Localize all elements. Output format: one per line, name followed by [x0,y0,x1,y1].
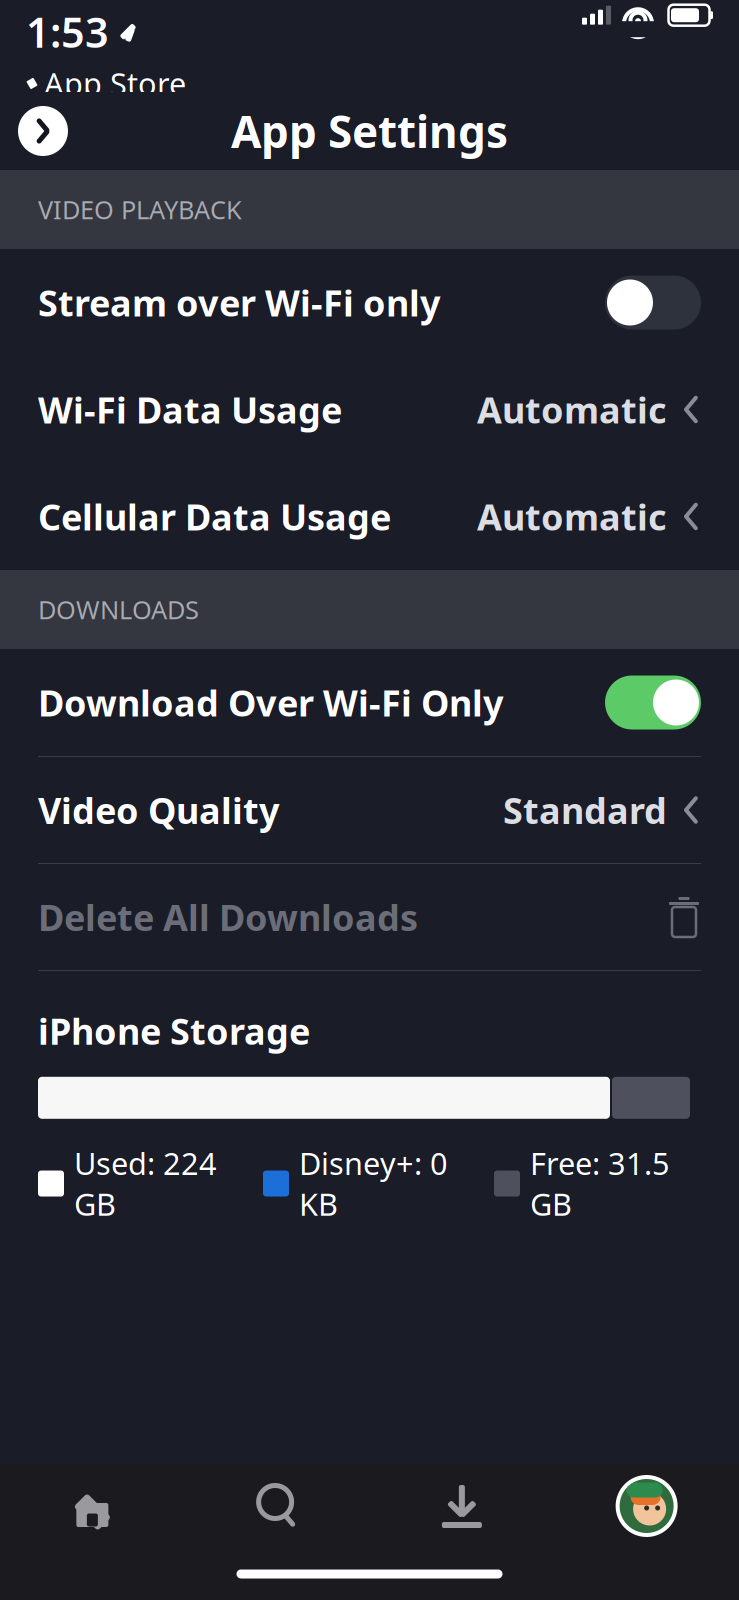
staticText: Wi-Fi Data Usage [38,386,342,433]
button[interactable]: Stream over Wi-Fi only [0,249,739,356]
staticText: VIDEO PLAYBACK [38,193,242,226]
button[interactable]: Wi-Fi Data Usage [0,356,739,463]
staticText: App Store [44,63,186,104]
staticText: Standard [503,786,667,834]
staticText: iPhone Storage [38,1007,310,1055]
staticText: Used: 224 GB [74,1143,217,1224]
staticText: Disney+: 0 KB [299,1143,448,1224]
staticText: Video Quality [38,786,280,834]
button[interactable]: Download Over Wi-Fi Only [0,649,739,756]
staticText: Free: 31.5 GB [530,1143,670,1224]
staticText: 1:53 [26,4,109,59]
button[interactable]: Downloads [369,1464,554,1548]
button[interactable]: Profile [554,1464,739,1548]
staticText: Download Over Wi-Fi Only [38,679,504,726]
button[interactable]: Delete All Downloads [0,863,739,970]
button[interactable]: Home [0,1464,185,1548]
button[interactable]: Cellular Data Usage [0,463,739,570]
staticText: Delete All Downloads [38,893,418,941]
staticText: Automatic [477,493,667,540]
staticText: Automatic [477,386,667,433]
staticText: Cellular Data Usage [38,493,391,540]
staticText: DOWNLOADS [38,593,199,626]
staticText: App Settings [231,102,508,160]
button[interactable]: Back [18,106,68,156]
staticText: Stream over Wi-Fi only [38,279,441,326]
button[interactable]: Search [185,1464,370,1548]
button[interactable]: Video Quality [0,756,739,863]
